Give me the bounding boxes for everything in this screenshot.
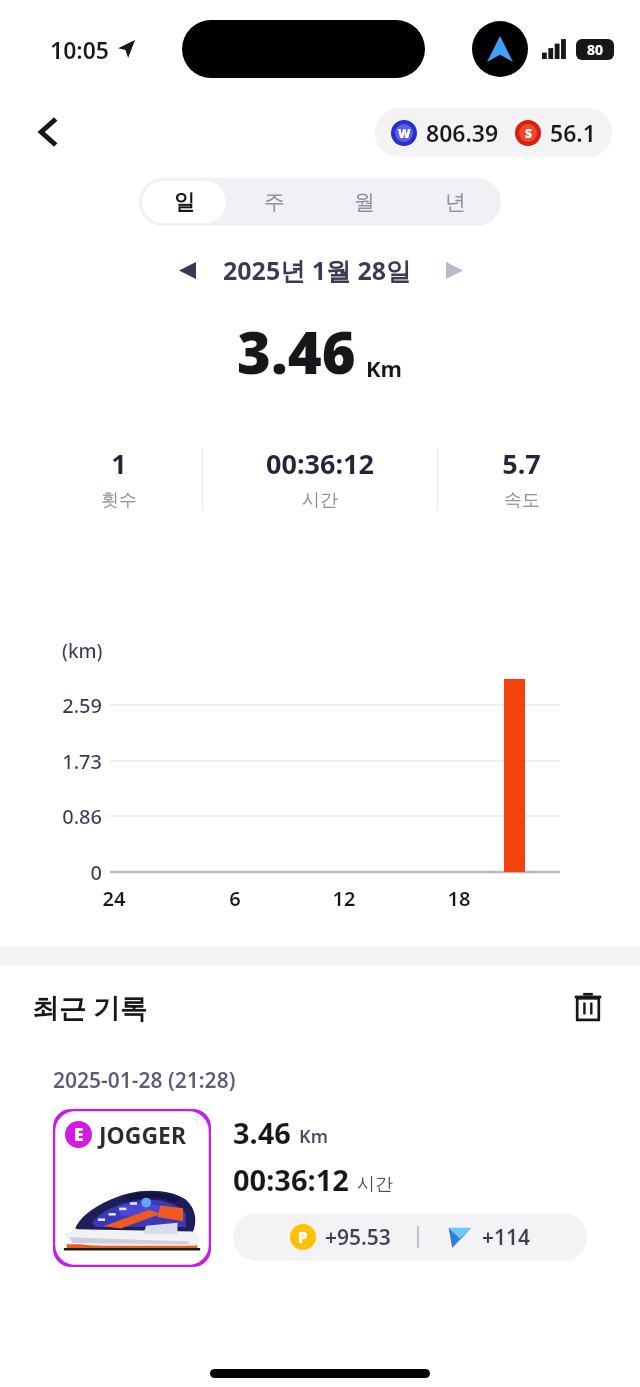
staticText: 시간	[302, 489, 338, 512]
staticText: 3.46	[237, 312, 356, 391]
staticText: W	[398, 125, 411, 141]
staticText: 56.1	[550, 117, 596, 148]
button[interactable]: 일	[142, 181, 226, 223]
staticText: 3.46	[233, 1113, 291, 1152]
staticText: 최근 기록	[32, 989, 148, 1026]
button[interactable]: 2025-01-28 (21:28)	[35, 1048, 605, 1283]
staticText: 10:05	[50, 34, 109, 65]
staticText: 18	[443, 885, 475, 912]
staticText: JOGGER	[99, 1119, 187, 1150]
staticText: 주	[264, 189, 285, 215]
staticText: +95.53	[325, 1223, 391, 1252]
button[interactable]: W	[375, 108, 612, 157]
button[interactable]: Delete records	[564, 983, 612, 1031]
button[interactable]: 년	[413, 181, 498, 223]
staticText: 년	[445, 189, 466, 215]
staticText: 월	[354, 189, 375, 215]
staticText: S	[525, 125, 532, 141]
staticText: 1.73	[34, 748, 102, 775]
staticText: 2.59	[34, 692, 102, 719]
staticText: 24	[98, 885, 130, 912]
button[interactable]: 주	[232, 181, 316, 223]
staticText: (km)	[62, 638, 103, 664]
staticText: 일	[174, 189, 195, 215]
staticText: 1	[111, 445, 127, 482]
staticText: 806.39	[426, 117, 499, 148]
staticText: Km	[299, 1124, 328, 1149]
staticText: 2025년 1월 28일	[223, 253, 412, 287]
button[interactable]: Back	[26, 108, 74, 156]
staticText: 80	[587, 40, 604, 59]
button[interactable]: P	[233, 1213, 587, 1261]
staticText: 12	[328, 885, 360, 912]
staticText: E	[74, 1123, 84, 1146]
staticText: 속도	[504, 489, 540, 512]
staticText: Km	[366, 353, 403, 383]
staticText: 6	[219, 885, 251, 912]
button[interactable]: Next day	[434, 250, 474, 290]
staticText: 횟수	[101, 489, 137, 512]
staticText: 시간	[357, 1173, 393, 1196]
staticText: 00:36:12	[266, 445, 374, 482]
button[interactable]: 1	[35, 421, 605, 536]
staticText: 2025-01-28 (21:28)	[53, 1066, 236, 1095]
staticText: 00:36:12	[233, 1160, 349, 1199]
staticText: 0	[34, 859, 102, 886]
staticText: 5.7	[502, 445, 541, 482]
staticText: 0.86	[34, 803, 102, 830]
staticText: +114	[482, 1223, 531, 1252]
staticText: P	[298, 1227, 308, 1247]
button[interactable]: Previous day	[167, 250, 207, 290]
button[interactable]: 월	[322, 181, 407, 223]
